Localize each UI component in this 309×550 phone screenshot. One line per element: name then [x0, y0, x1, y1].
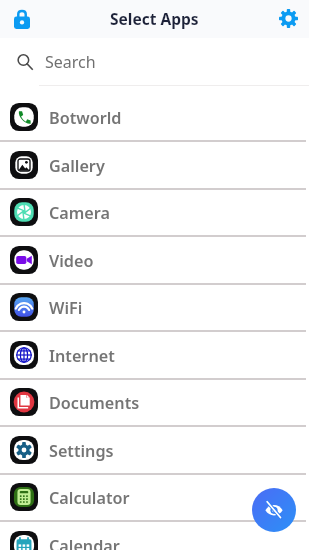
staticText: WiFi [49, 297, 83, 319]
staticText: Settings [49, 440, 114, 462]
button[interactable]: Camera [0, 189, 309, 235]
button[interactable]: Calculator [0, 474, 309, 520]
button[interactable]: Settings [273, 3, 303, 33]
staticText: Botworld [49, 107, 122, 129]
staticText: Camera [49, 202, 110, 224]
staticText: Gallery [49, 155, 105, 177]
button[interactable]: Video [0, 237, 309, 283]
button[interactable]: Documents [0, 379, 309, 425]
button[interactable]: Gallery [0, 142, 309, 188]
staticText: Search [45, 51, 96, 73]
button[interactable]: Botworld [0, 94, 309, 140]
staticText: Video [49, 250, 94, 272]
button[interactable]: Internet [0, 332, 309, 378]
staticText: Select Apps [110, 8, 199, 29]
staticText: Documents [49, 392, 140, 414]
staticText: Calculator [49, 487, 130, 509]
staticText: Internet [49, 345, 115, 367]
button[interactable]: WiFi [0, 284, 309, 330]
button[interactable]: Hide apps [252, 488, 296, 532]
button[interactable]: Lock [7, 4, 36, 33]
staticText: Calendar [49, 535, 120, 550]
button[interactable]: Search [0, 38, 309, 85]
button[interactable]: Calendar [0, 522, 309, 550]
button[interactable]: Settings [0, 427, 309, 473]
